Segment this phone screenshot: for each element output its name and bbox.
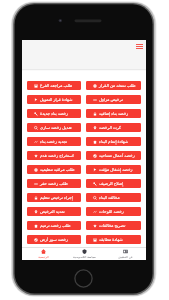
button[interactable]: طلب مراجعة الفرع bbox=[27, 81, 81, 90]
button[interactable]: تمديد الترخيص bbox=[27, 207, 81, 216]
staticText: الرئيسية bbox=[38, 255, 49, 259]
button[interactable]: طلب نسخة من القرار bbox=[86, 81, 141, 90]
staticText: شهادة مطابقة bbox=[99, 237, 123, 243]
staticText: شهادة قرار التمويل bbox=[40, 97, 73, 103]
button[interactable]: مخالفة البناء bbox=[86, 193, 141, 202]
button[interactable]: شهادة مطابقة bbox=[86, 235, 141, 244]
button[interactable]: رخصة أعمال مساحية bbox=[86, 151, 141, 160]
button[interactable]: تعديل رخصة ساري bbox=[27, 123, 81, 132]
button[interactable]: استخراج رخصة هدم bbox=[27, 151, 81, 160]
staticText: إجراء ترخيص تنظيم bbox=[40, 195, 73, 201]
button[interactable]: إجراء ترخيص تنظيم bbox=[27, 193, 81, 202]
button[interactable]: رخصة اللوحات bbox=[86, 207, 141, 216]
button[interactable]: طلب رخصة حفر bbox=[27, 179, 81, 188]
staticText: تعديل رخصة ساري bbox=[40, 125, 72, 131]
staticText: رخصة بناء إضافية bbox=[99, 111, 129, 117]
staticText: سياسة الخصوصية bbox=[73, 255, 96, 259]
button[interactable]: رخصة سور أرض bbox=[27, 235, 81, 244]
staticText: رخصة سور أرض bbox=[40, 237, 68, 243]
button[interactable]: رخصة بناء جديدة bbox=[27, 109, 81, 118]
staticText: شهادة إتمام البناء bbox=[99, 139, 129, 145]
button[interactable]: تجديد رخصة بناء bbox=[27, 137, 81, 146]
staticText: كرت الرخصة bbox=[99, 125, 122, 131]
button[interactable]: كرت الرخصة bbox=[86, 123, 141, 132]
staticText: تجديد رخصة بناء bbox=[40, 139, 68, 145]
staticText: تصريح مخالفات bbox=[99, 223, 126, 229]
button[interactable]: رخصة بناء إضافية bbox=[86, 109, 141, 118]
button[interactable]: إصلاح الرصيف bbox=[86, 179, 141, 188]
staticText: مخالفة البناء bbox=[99, 195, 120, 201]
staticText: طلب نسخة من القرار bbox=[99, 83, 136, 89]
staticText: إصلاح الرصيف bbox=[99, 181, 124, 187]
staticText: طلب مراقبة تنظيمية bbox=[40, 167, 75, 173]
button[interactable]: شهادة قرار التمويل bbox=[27, 95, 81, 104]
button[interactable]: Open navigation menu bbox=[136, 44, 143, 49]
staticText: طلب مراجعة الفرع bbox=[40, 83, 73, 89]
button[interactable]: طلب رخصة ترميم bbox=[27, 221, 81, 230]
staticText: رخصة بناء جديدة bbox=[40, 111, 69, 117]
button[interactable]: رخصة إشغال مؤقت bbox=[86, 165, 141, 174]
staticText: طلب رخصة ترميم bbox=[40, 223, 71, 229]
button[interactable]: سياسة الخصوصية bbox=[64, 248, 105, 260]
button[interactable]: عن التطبيق bbox=[105, 248, 146, 260]
button[interactable]: ترخيص مزاول bbox=[86, 95, 141, 104]
staticText: طلب رخصة حفر bbox=[40, 181, 68, 187]
staticText: ترخيص مزاول bbox=[99, 97, 123, 103]
staticText: رخصة اللوحات bbox=[99, 209, 124, 215]
staticText: رخصة أعمال مساحية bbox=[99, 153, 135, 159]
button[interactable]: شهادة إتمام البناء bbox=[86, 137, 141, 146]
button[interactable]: طلب مراقبة تنظيمية bbox=[27, 165, 81, 174]
staticText: رخصة إشغال مؤقت bbox=[99, 167, 133, 173]
staticText: تمديد الترخيص bbox=[40, 209, 65, 215]
staticText: عن التطبيق bbox=[118, 255, 133, 259]
button[interactable]: تصريح مخالفات bbox=[86, 221, 141, 230]
staticText: استخراج رخصة هدم bbox=[40, 153, 74, 159]
button[interactable]: الرئيسية bbox=[22, 248, 64, 260]
